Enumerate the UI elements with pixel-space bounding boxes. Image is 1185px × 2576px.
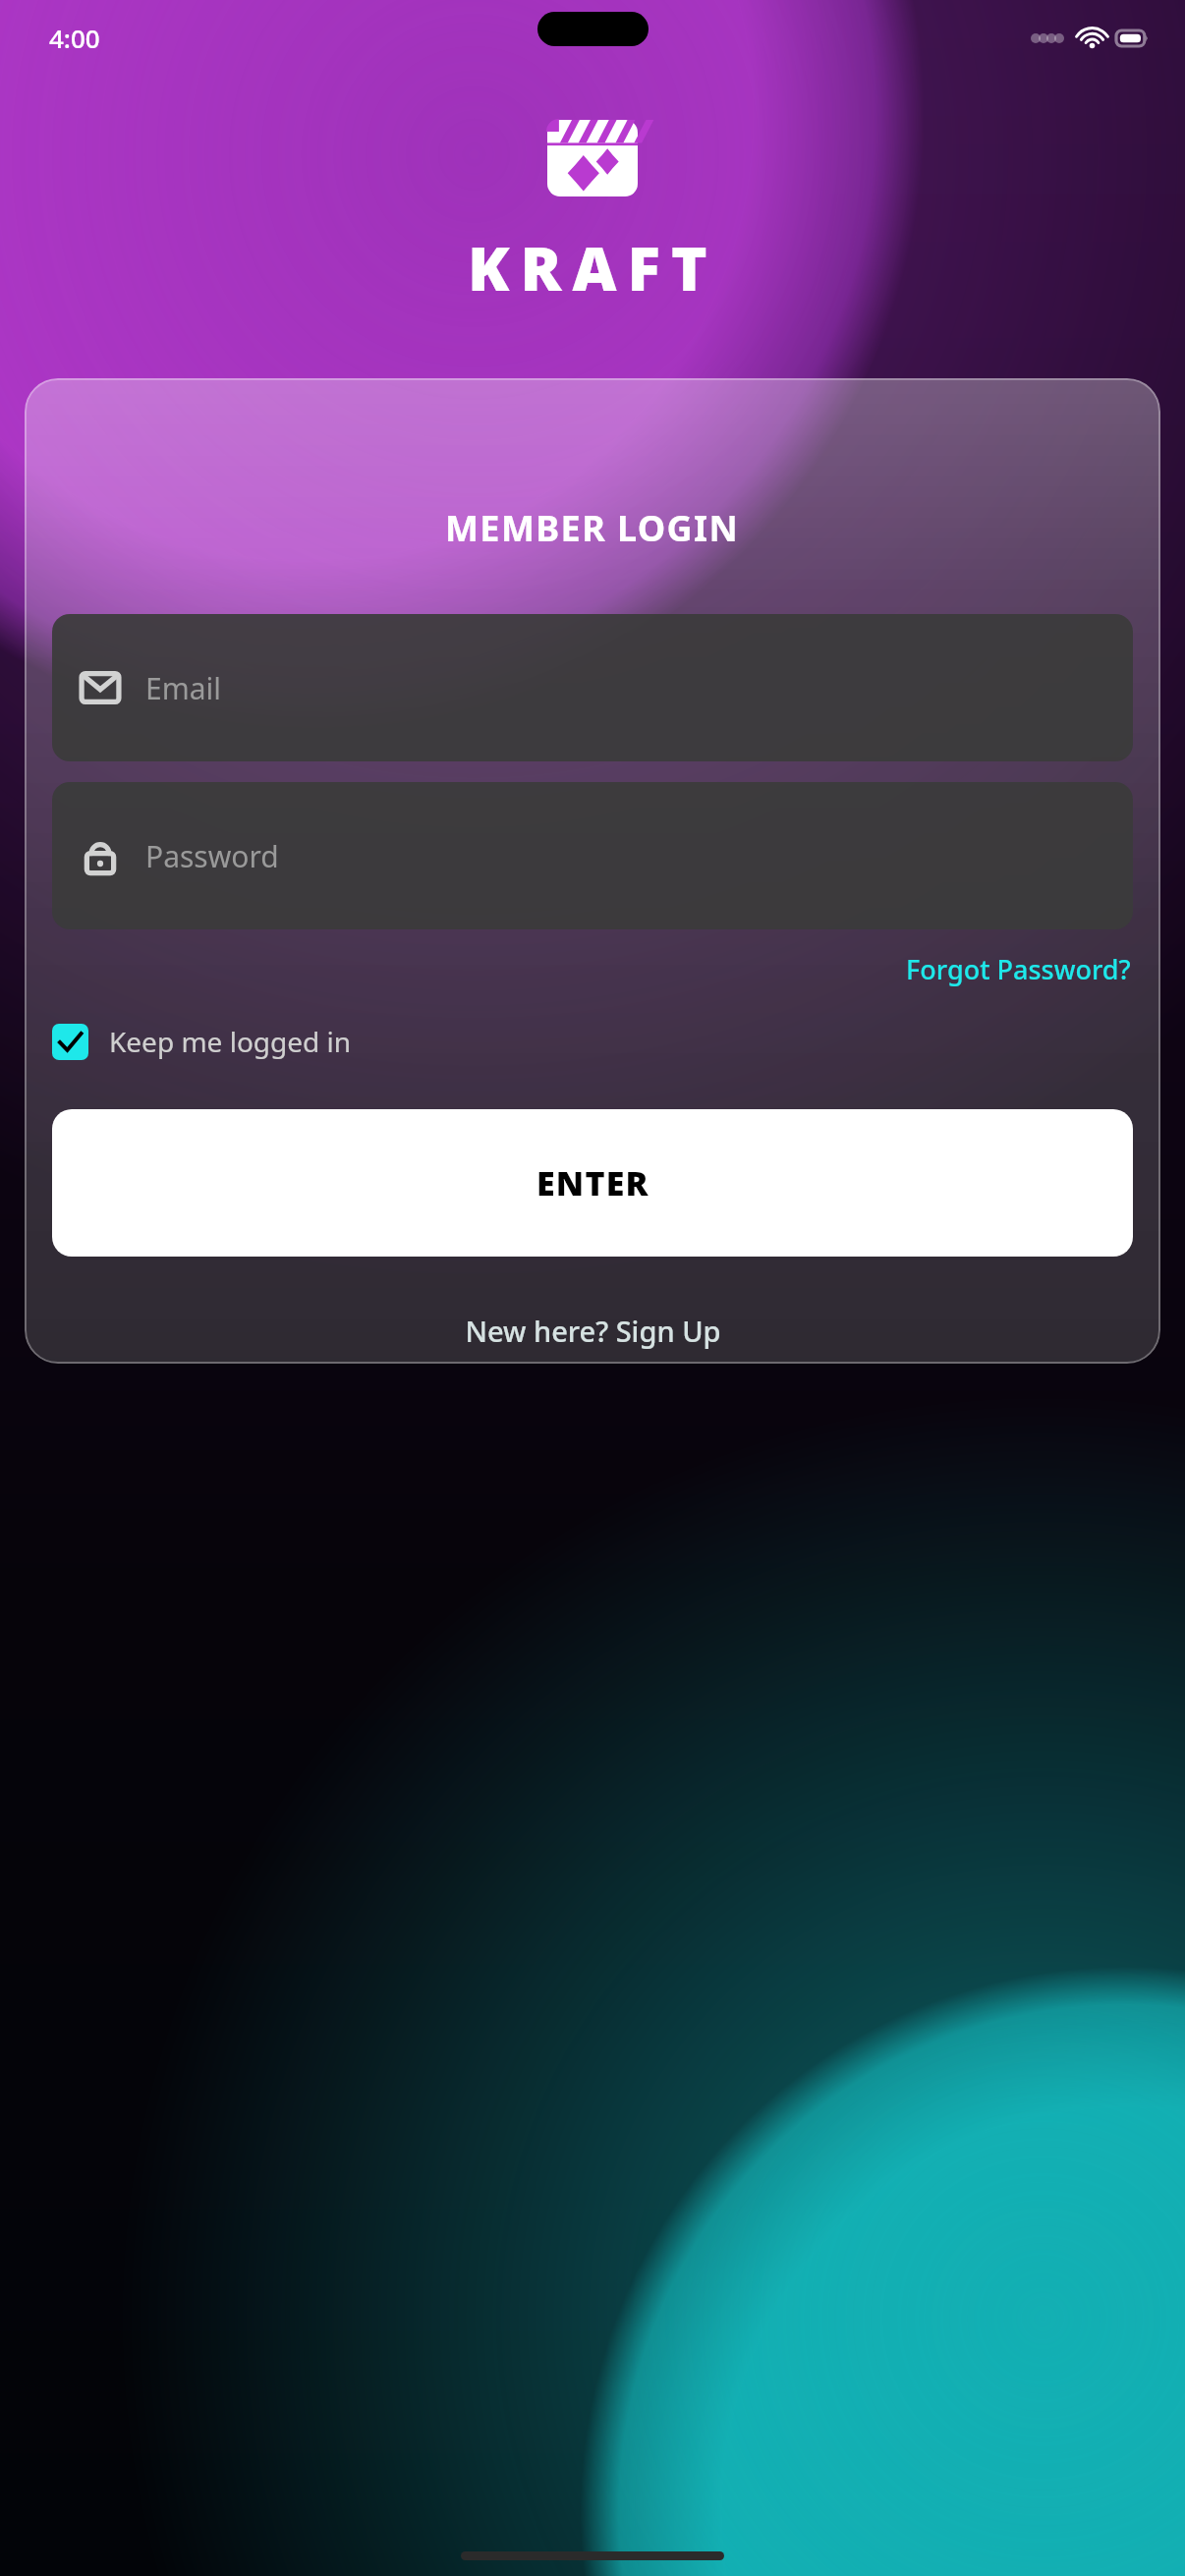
button[interactable]: Email xyxy=(52,614,1133,761)
button[interactable]: Password xyxy=(52,782,1133,929)
button[interactable]: Forgot Password? xyxy=(904,947,1133,991)
button[interactable]: Keep me logged in xyxy=(52,1019,1133,1064)
staticText: ENTER xyxy=(536,1160,649,1205)
staticText: Keep me logged in xyxy=(109,1023,352,1060)
staticText: MEMBER LOGIN xyxy=(445,504,740,552)
staticText: 4:00 xyxy=(49,21,100,55)
button[interactable]: New here? Sign Up xyxy=(459,1306,727,1356)
staticText: Email xyxy=(145,668,222,708)
staticText: KRAFT xyxy=(468,226,718,308)
button[interactable]: ENTER xyxy=(52,1109,1133,1257)
staticText: Password xyxy=(145,836,279,876)
